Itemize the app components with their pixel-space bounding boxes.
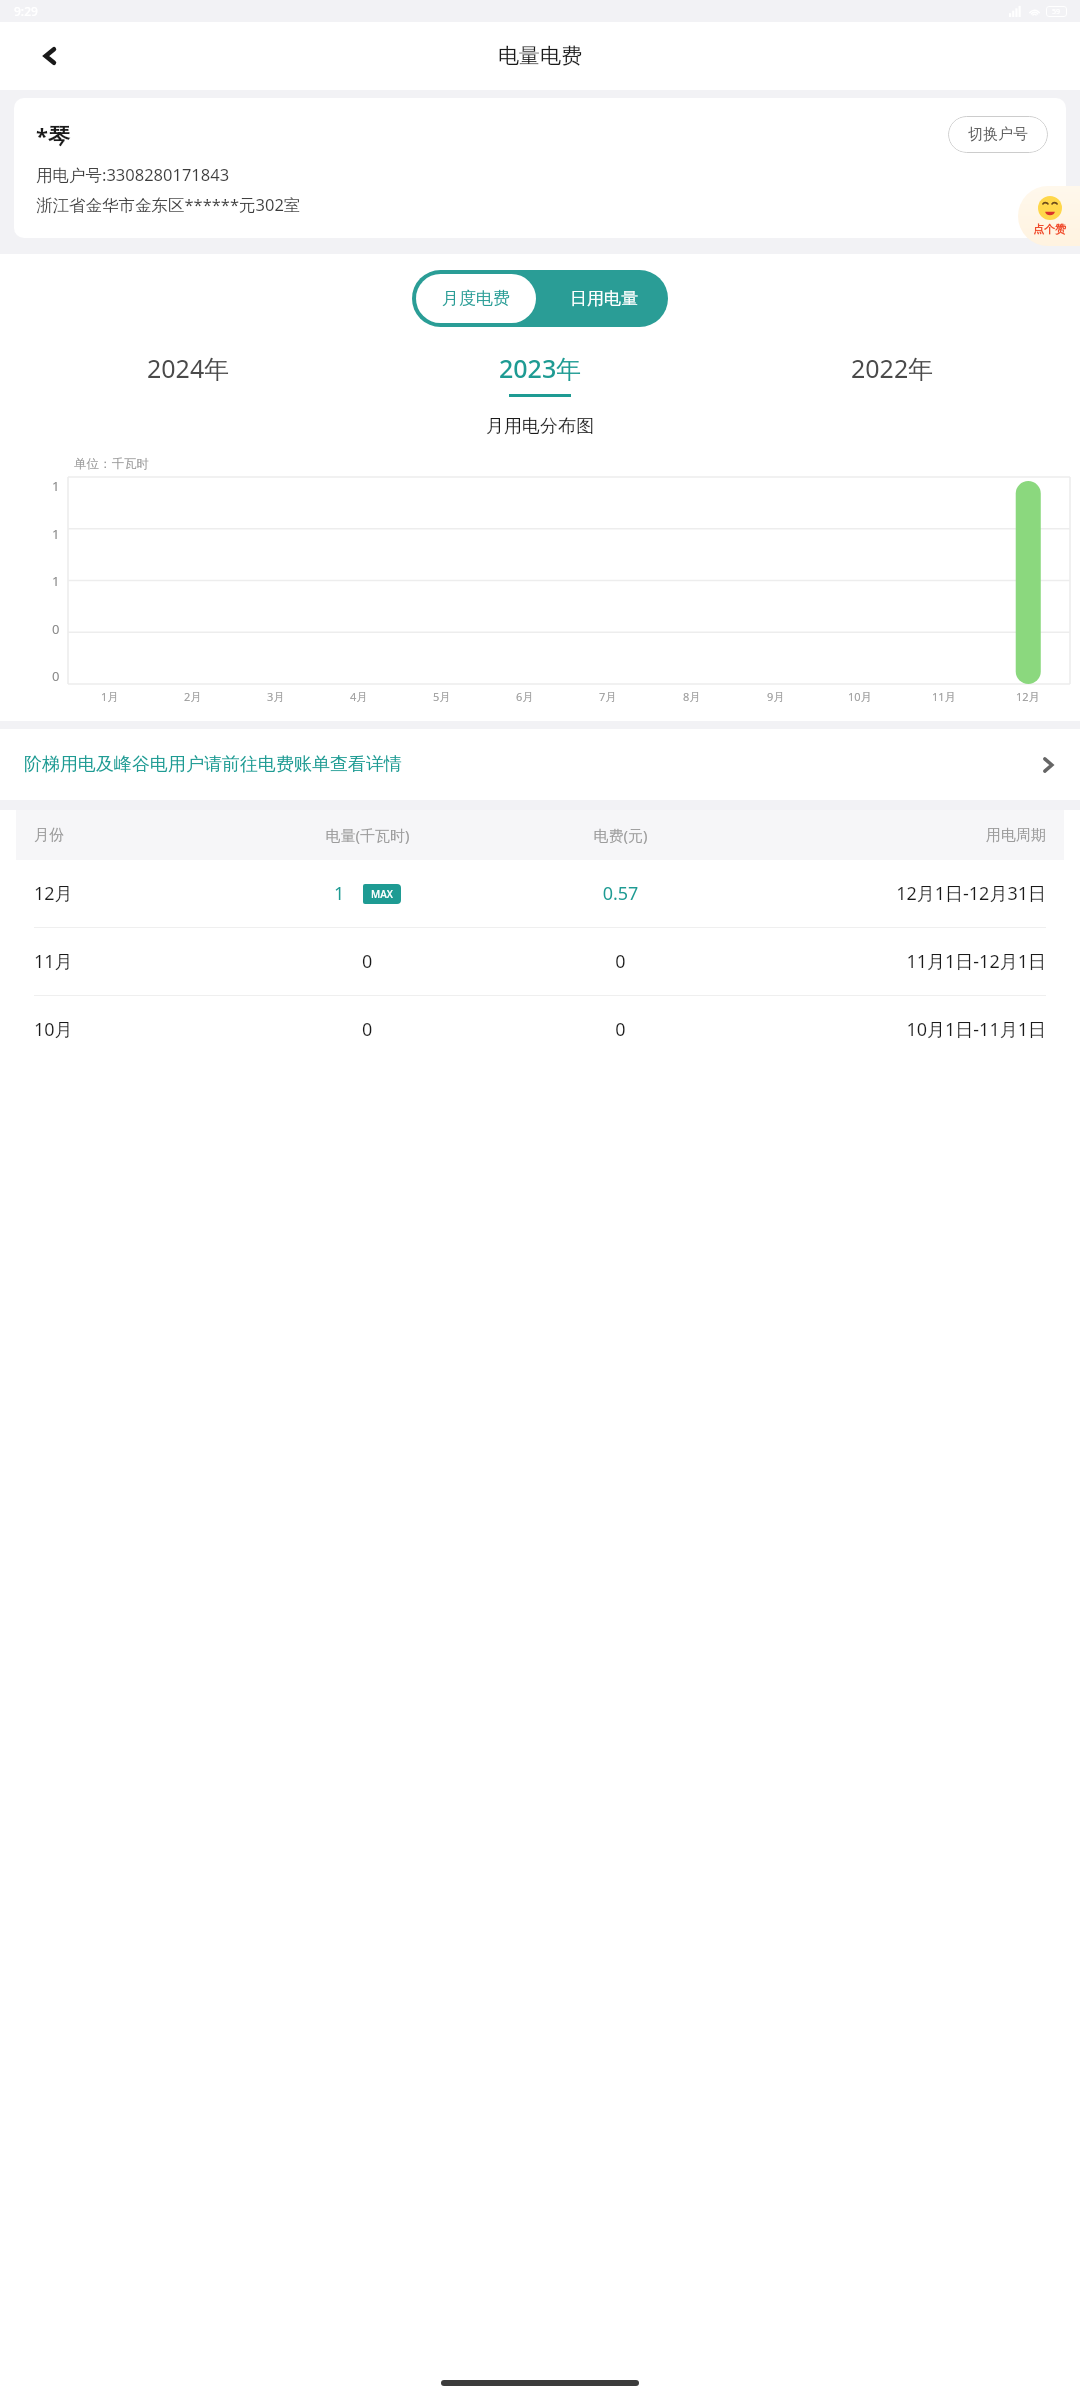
staticText: 2024年 xyxy=(147,351,230,385)
staticText: 浙江省金华市金东区******元302室 xyxy=(36,193,301,216)
staticText: 7月 xyxy=(599,689,617,704)
staticText: 11月 xyxy=(34,949,226,974)
staticText: 2022年 xyxy=(851,351,934,385)
button[interactable]: 2022年 xyxy=(716,345,1068,403)
staticText: 10月 xyxy=(34,1017,226,1042)
staticText: 0 xyxy=(509,1017,732,1042)
staticText: 单位：千瓦时 xyxy=(74,456,149,472)
staticText: 电费(元) xyxy=(509,825,732,845)
staticText: 2023年 xyxy=(499,351,582,385)
staticText: 1 xyxy=(334,881,345,906)
button[interactable]: 11月 xyxy=(16,928,1064,995)
staticText: 1月 xyxy=(101,689,119,704)
staticText: 日用电量 xyxy=(570,288,638,309)
staticText: 月度电费 xyxy=(442,288,510,309)
staticText: 月用电分布图 xyxy=(0,415,1080,438)
button[interactable]: 日用电量 xyxy=(540,270,668,327)
staticText: 用电户号:3308280171843 xyxy=(36,163,230,186)
staticText: 点个赞 xyxy=(1033,222,1066,236)
button[interactable]: 月度电费 xyxy=(416,274,536,323)
staticText: 2月 xyxy=(184,689,202,704)
staticText: 电量电费 xyxy=(498,43,582,69)
button[interactable]: 阶梯用电及峰谷电用户请前往电费账单查看详情 xyxy=(0,729,1080,800)
staticText: 12月 xyxy=(34,881,226,906)
staticText: 0.57 xyxy=(509,881,732,906)
staticText: 0 xyxy=(362,1017,373,1042)
staticText: 切换户号 xyxy=(968,125,1028,144)
staticText: 月份 xyxy=(34,826,226,845)
staticText: 6月 xyxy=(516,689,534,704)
staticText: 0 xyxy=(362,949,373,974)
staticText: 0 xyxy=(52,620,60,638)
staticText: 59 xyxy=(1052,7,1061,17)
staticText: 0 xyxy=(509,949,732,974)
button[interactable]: 10月 xyxy=(16,996,1064,1063)
staticText: 4月 xyxy=(350,689,368,704)
button[interactable]: 点个赞 xyxy=(1018,186,1080,246)
staticText: 5月 xyxy=(433,689,451,704)
staticText: *琴 xyxy=(36,120,70,150)
staticText: 9:29 xyxy=(14,3,38,19)
staticText: 1 xyxy=(52,572,60,590)
staticText: 阶梯用电及峰谷电用户请前往电费账单查看详情 xyxy=(24,753,402,776)
staticText: 10月 xyxy=(848,689,872,704)
button[interactable]: 2023年 xyxy=(364,345,716,403)
staticText: 11月1日-12月1日 xyxy=(732,949,1046,974)
staticText: 1 xyxy=(52,525,60,543)
button[interactable]: *琴 xyxy=(14,98,1066,238)
staticText: 用电周期 xyxy=(732,826,1046,845)
staticText: 8月 xyxy=(683,689,701,704)
button[interactable]: Back xyxy=(28,34,72,78)
staticText: 9月 xyxy=(767,689,785,704)
button[interactable]: 切换户号 xyxy=(948,116,1048,153)
staticText: MAX xyxy=(371,887,393,901)
staticText: 11月 xyxy=(932,689,956,704)
staticText: 1 xyxy=(52,477,60,495)
staticText: 3月 xyxy=(267,689,285,704)
staticText: 10月1日-11月1日 xyxy=(732,1017,1046,1042)
staticText: 12月 xyxy=(1016,689,1040,704)
staticText: 12月1日-12月31日 xyxy=(732,881,1046,906)
button[interactable]: 12月 xyxy=(16,860,1064,927)
button[interactable]: 2024年 xyxy=(12,345,364,403)
staticText: 电量(千瓦时) xyxy=(226,825,509,845)
staticText: 0 xyxy=(52,667,60,685)
